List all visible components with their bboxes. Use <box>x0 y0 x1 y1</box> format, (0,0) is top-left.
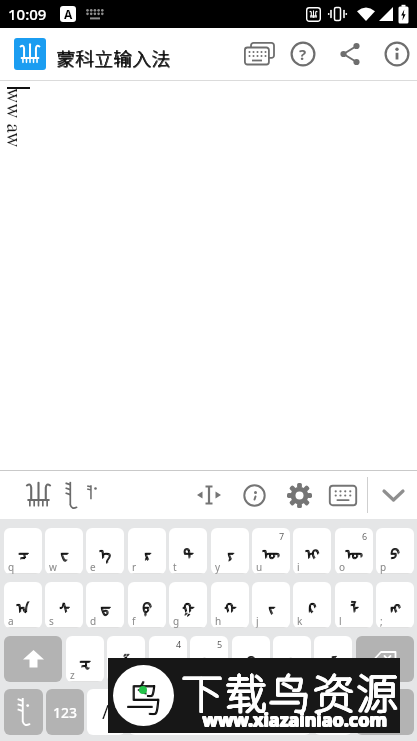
button[interactable] <box>4 636 62 682</box>
staticText: ᠹ <box>142 593 152 618</box>
staticText: ᠤ <box>203 647 217 672</box>
staticText: 6 <box>362 530 368 542</box>
staticText: ᠴ <box>19 539 30 564</box>
button[interactable]: / <box>87 689 125 735</box>
staticText: w <box>49 560 57 574</box>
staticText: 5 <box>217 638 223 650</box>
button[interactable]: ᠹ <box>128 582 166 628</box>
button[interactable] <box>238 32 282 76</box>
button[interactable] <box>356 689 414 735</box>
button[interactable] <box>285 481 313 509</box>
button[interactable]: ᠶ <box>211 528 249 574</box>
button[interactable]: ᠸ <box>45 528 83 574</box>
staticText: ᠰ <box>60 593 71 618</box>
staticText: ᠨ <box>289 647 298 672</box>
button[interactable] <box>356 636 414 682</box>
staticText: 鸟 <box>126 669 163 723</box>
staticText: www.xiazainiao.com <box>202 707 387 732</box>
staticText: 鸟 <box>126 670 163 724</box>
staticText: 蒙科立输入法 <box>57 45 172 73</box>
button[interactable]: ᠭ <box>169 582 207 628</box>
staticText: ᠭ <box>182 594 195 619</box>
staticText: ᠲ <box>183 540 194 565</box>
button[interactable]: ᠰ <box>45 582 83 628</box>
staticText: ᠡ <box>100 539 112 564</box>
staticText: ᠱ <box>121 647 132 672</box>
button[interactable]: ᠥ <box>335 528 373 574</box>
button[interactable]: ᠨ <box>273 636 311 682</box>
button[interactable]: ᠪ <box>232 636 270 682</box>
staticText: ᠢ <box>305 539 319 564</box>
staticText: 下载鸟资源 <box>181 659 401 720</box>
staticText: ᠳ <box>100 593 111 618</box>
staticText: www.xiazainiao.com <box>203 707 388 732</box>
button[interactable] <box>129 689 311 735</box>
button[interactable] <box>14 38 46 70</box>
staticText: ᠪ <box>246 647 256 672</box>
staticText: ᠹ <box>143 593 153 618</box>
button[interactable]: ᠡ <box>86 528 124 574</box>
button[interactable]: ᠷ <box>128 528 166 574</box>
staticText: x <box>111 668 117 682</box>
button[interactable]: ᠴ <box>4 528 42 574</box>
staticText: ᠫ <box>390 540 400 565</box>
button[interactable] <box>4 689 43 735</box>
staticText: ᠦ <box>263 539 281 564</box>
button[interactable]: ᠽ <box>66 636 104 682</box>
button[interactable]: ᠱ <box>107 636 145 682</box>
staticText: ᠥ <box>345 539 363 564</box>
staticText: ᠤ <box>202 647 216 672</box>
staticText: 蒙科立输入法 <box>57 44 172 72</box>
staticText: ᠮ <box>329 647 338 672</box>
button[interactable]: ᠠ <box>4 582 42 628</box>
button[interactable] <box>378 481 408 509</box>
button[interactable]: ᠢ <box>293 528 331 574</box>
staticText: ᠴ <box>18 539 29 564</box>
button[interactable]: ᠫ <box>376 528 414 574</box>
button[interactable]: ᠮ <box>314 636 352 682</box>
button[interactable] <box>328 32 372 76</box>
staticText: d <box>90 614 97 628</box>
button[interactable] <box>375 32 417 76</box>
staticText: 下载鸟资源 <box>182 660 402 721</box>
staticText: 4 <box>176 638 182 650</box>
staticText: ᠪ <box>246 648 256 673</box>
button[interactable]: 123 <box>46 689 84 735</box>
button[interactable]: ᠲ <box>169 528 207 574</box>
staticText: / <box>102 699 110 725</box>
staticText: ᠸ <box>60 539 69 564</box>
staticText: 蒙科立输入法 <box>56 44 171 72</box>
button[interactable] <box>240 481 268 509</box>
staticText: ᠳ <box>101 593 112 618</box>
button[interactable]: ᠬ <box>211 582 249 628</box>
button[interactable]: ᠼ <box>149 636 187 682</box>
button[interactable]: ᠤ <box>190 636 228 682</box>
staticText: v <box>194 668 200 682</box>
staticText: www.xiazainiao.com <box>203 708 388 733</box>
button[interactable]: ᠺ <box>293 582 331 628</box>
staticText: ᠺ <box>308 593 316 618</box>
staticText: ᠨ <box>288 648 297 673</box>
staticText: ᠫ <box>390 539 400 564</box>
staticText: ᠭ <box>183 593 196 618</box>
staticText: ᠸ <box>60 540 69 565</box>
staticText: ᠼ <box>163 647 176 672</box>
button[interactable] <box>314 689 352 735</box>
button[interactable]: ᠩ <box>376 582 414 628</box>
button[interactable] <box>195 481 223 509</box>
button[interactable]: ᠯ <box>335 582 373 628</box>
staticText: 蒙科立输入法 <box>56 44 171 72</box>
staticText: h <box>215 614 222 628</box>
button[interactable]: ᠦ <box>252 528 290 574</box>
button[interactable]: ᠵ <box>252 582 290 628</box>
button[interactable] <box>328 481 358 509</box>
staticText: ᠵ <box>268 594 275 619</box>
button[interactable] <box>22 480 54 510</box>
staticText: p <box>380 560 387 574</box>
button[interactable]: ? <box>281 32 325 76</box>
staticText: ᠪ <box>247 647 257 672</box>
button[interactable]: ᠳ <box>86 582 124 628</box>
staticText: 蒙科立输入法 <box>56 44 171 72</box>
staticText: ᠲ <box>184 539 195 564</box>
staticText: ᠵ <box>268 593 275 618</box>
